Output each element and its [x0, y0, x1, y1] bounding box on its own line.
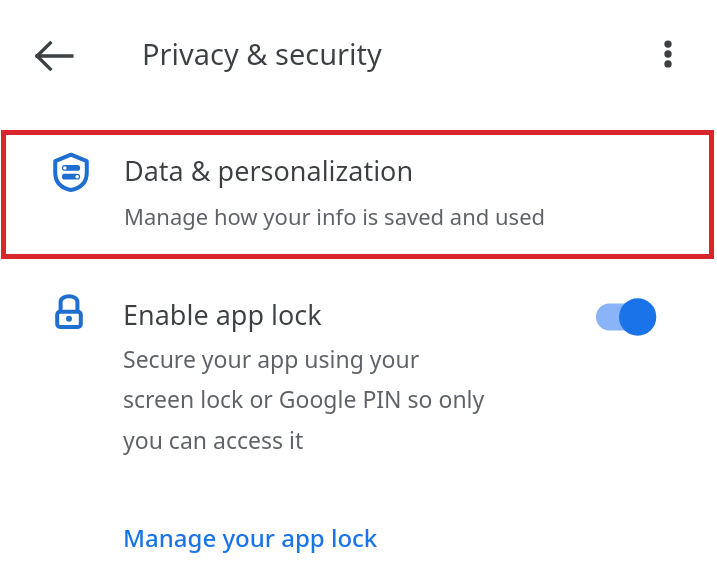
staticText: Privacy & security — [142, 34, 382, 73]
staticText: Enable app lock — [123, 296, 322, 333]
staticText: Secure your app using your screen lock o… — [123, 343, 485, 456]
staticText: Data & personalization — [124, 152, 414, 189]
button[interactable]: Enable app lock — [0, 282, 717, 467]
button[interactable]: Back — [20, 22, 88, 90]
staticText: Manage how your info is saved and used — [124, 201, 546, 231]
button[interactable]: Enable app lock toggle, on — [588, 290, 660, 344]
button[interactable]: Manage your app lock — [113, 510, 388, 565]
staticText: Manage your app lock — [123, 521, 378, 554]
button[interactable]: More options — [636, 22, 700, 86]
button[interactable]: Data & personalization — [1, 130, 714, 259]
